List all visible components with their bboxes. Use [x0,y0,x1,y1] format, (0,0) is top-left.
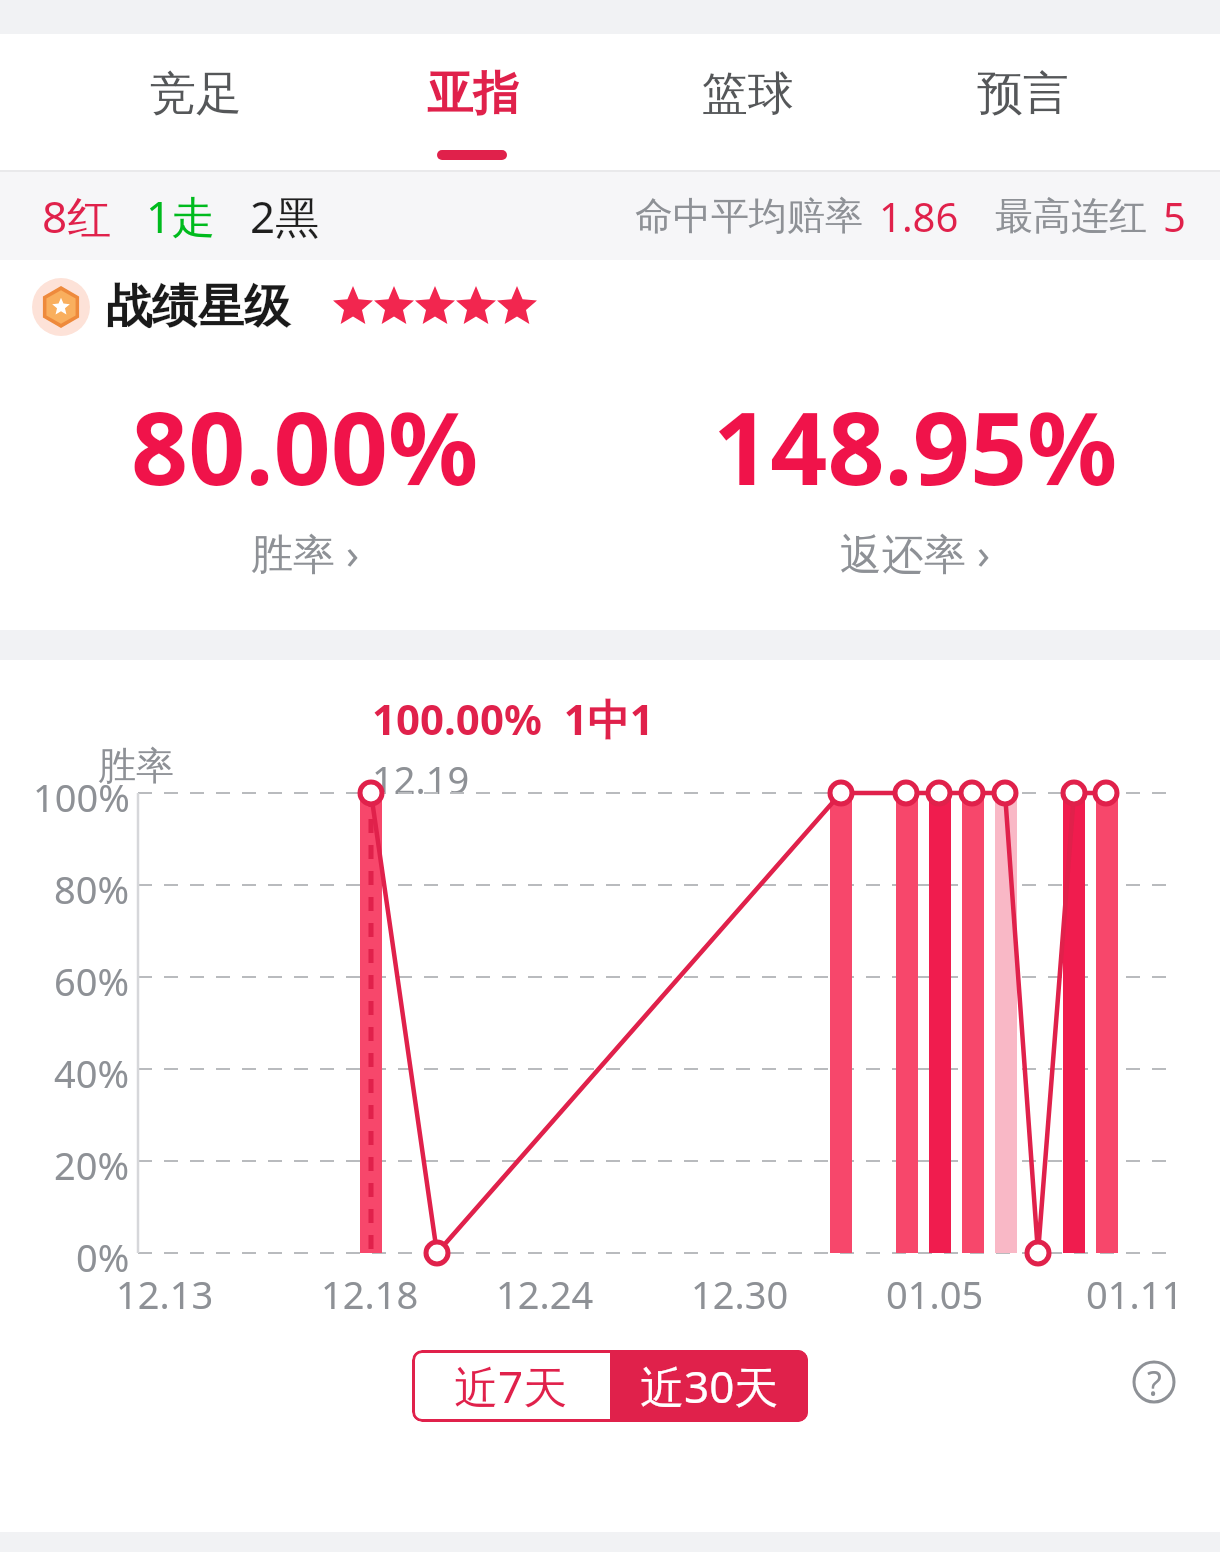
button[interactable]: 80.00% [0,378,610,581]
staticText: 12.24 [496,1268,594,1320]
button[interactable]: 近7天 [412,1350,610,1422]
staticText: 胜率 [98,742,174,790]
staticText: 战绩星级 [106,278,290,336]
button[interactable]: 近30天 [610,1350,808,1422]
staticText: 8红 [42,186,112,246]
staticText: 亚指 [427,65,519,123]
staticText: 20% [54,1139,130,1191]
staticText: 近7天 [454,1356,568,1416]
staticText: 12.18 [321,1268,419,1320]
button[interactable]: 亚指 [383,34,563,170]
staticText: 1走 [146,186,216,246]
staticText: 1.86 [879,189,959,243]
other: Rating badge [32,278,90,336]
button[interactable]: 预言 [933,34,1113,170]
button[interactable]: Help [1132,1360,1176,1404]
staticText: 胜率 › [251,524,359,581]
button[interactable]: 竞足 [106,34,286,170]
staticText: 100.00% 1中1 [372,690,654,747]
staticText: 80% [54,863,130,915]
staticText: 12.13 [116,1268,214,1320]
staticText: 命中平均赔率 [635,192,863,240]
staticText: 12.19 [372,753,470,805]
staticText: 2黑 [250,186,320,246]
staticText: 148.95% [713,378,1118,514]
staticText: 60% [54,955,130,1007]
staticText: 40% [54,1047,130,1099]
staticText: 80.00% [131,378,479,514]
button[interactable]: 148.95% [610,378,1220,581]
staticText: 近30天 [640,1356,779,1416]
staticText: 篮球 [702,65,794,123]
staticText: 预言 [977,65,1069,123]
staticText: 0% [76,1231,130,1283]
staticText: 01.05 [886,1268,984,1320]
staticText: 100% [33,771,130,823]
staticText: 返还率 › [840,524,990,581]
staticText: 01.11 [1086,1268,1184,1320]
staticText: 12.30 [691,1268,789,1320]
staticText: 5 [1163,189,1186,243]
button[interactable]: 篮球 [658,34,838,170]
staticText: 竞足 [150,65,242,123]
staticText: 最高连红 [995,192,1147,240]
staticText: ? [1147,1360,1162,1404]
